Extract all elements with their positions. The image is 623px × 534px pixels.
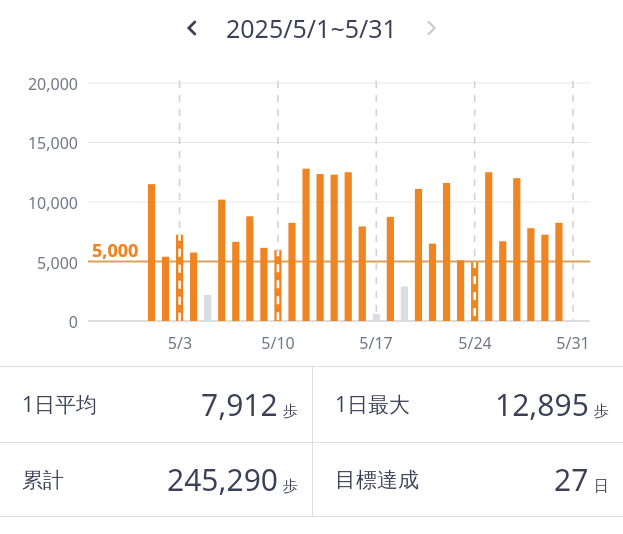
staticText: 歩 — [283, 477, 298, 496]
staticText: 2025/5/1~5/31 — [226, 11, 397, 45]
staticText: 7,912 — [201, 384, 278, 425]
staticText: 27 — [554, 459, 589, 500]
staticText: 15,000 — [0, 132, 78, 154]
staticText: 累計 — [22, 467, 64, 493]
button[interactable]: Next period — [411, 8, 451, 48]
button[interactable]: Previous period — [172, 8, 212, 48]
staticText: 歩 — [594, 402, 609, 421]
staticText: 5,000 — [92, 238, 139, 263]
staticText: 0 — [0, 311, 78, 333]
button[interactable]: 1日最大 — [313, 367, 623, 442]
staticText: 10,000 — [0, 192, 78, 214]
button[interactable]: 目標達成 — [313, 443, 623, 516]
button[interactable]: 1日平均 — [0, 367, 312, 442]
button[interactable]: 累計 — [0, 443, 312, 516]
staticText: 1日最大 — [335, 390, 411, 419]
staticText: 5/10 — [248, 332, 308, 354]
staticText: 5/17 — [346, 332, 406, 354]
staticText: 5/24 — [445, 332, 505, 354]
staticText: 20,000 — [0, 73, 78, 95]
staticText: 目標達成 — [335, 467, 419, 493]
staticText: 245,290 — [167, 459, 278, 500]
staticText: 1日平均 — [22, 390, 98, 419]
staticText: 5/3 — [150, 332, 210, 354]
staticText: 歩 — [283, 402, 298, 421]
staticText: 5,000 — [0, 252, 78, 274]
staticText: 12,895 — [495, 384, 589, 425]
staticText: 5/31 — [543, 332, 603, 354]
staticText: 日 — [594, 477, 609, 496]
